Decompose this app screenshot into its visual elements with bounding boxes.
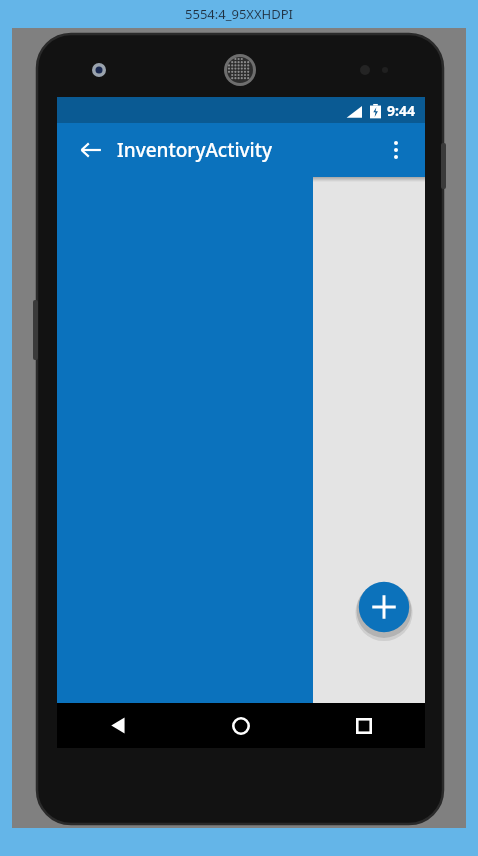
button[interactable]: Back: [57, 703, 179, 748]
button[interactable]: Home: [179, 703, 302, 748]
staticText: 9:44: [387, 101, 415, 120]
button[interactable]: Recent apps: [302, 703, 425, 748]
button[interactable]: More options: [375, 129, 417, 171]
button[interactable]: Navigate up: [71, 130, 111, 170]
button[interactable]: Add item: [356, 579, 412, 635]
staticText: InventoryActivity: [117, 137, 273, 163]
staticText: 5554:4_95XXHDPI: [185, 5, 293, 23]
